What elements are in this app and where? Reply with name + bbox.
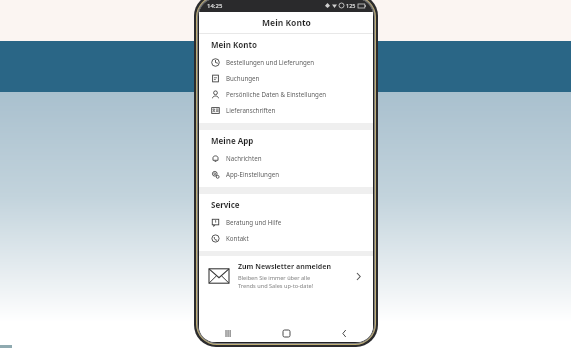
staticText: 14:25 <box>207 2 223 10</box>
button[interactable]: Bestellungen und Lieferungen <box>199 54 373 70</box>
staticText: Bestellungen und Lieferungen <box>226 58 315 66</box>
button[interactable]: Home <box>279 326 293 340</box>
staticText: App-Einstellungen <box>226 170 280 178</box>
button[interactable]: Kontakt <box>199 230 373 246</box>
staticText: Bleiben Sie immer über alle <box>238 274 311 282</box>
staticText: Persönliche Daten & Einstellungen <box>226 90 327 98</box>
button[interactable]: Back <box>337 326 351 340</box>
button[interactable]: Recent apps <box>221 326 235 340</box>
button[interactable]: Nachrichten <box>199 150 373 166</box>
staticText: Buchungen <box>226 74 260 82</box>
staticText: Mein Konto <box>211 39 257 50</box>
button[interactable]: Beratung und Hilfe <box>199 214 373 230</box>
staticText: Meine App <box>211 135 254 146</box>
button[interactable]: Zum Newsletter anmelden <box>199 256 373 296</box>
staticText: Lieferanschriften <box>226 106 276 114</box>
staticText: Nachrichten <box>226 154 262 162</box>
staticText: Service <box>211 199 240 210</box>
button[interactable]: Persönliche Daten & Einstellungen <box>199 86 373 102</box>
staticText: Kontakt <box>226 234 249 242</box>
staticText: Mein Konto <box>262 17 311 29</box>
staticText: 125 <box>346 2 356 9</box>
button[interactable]: Buchungen <box>199 70 373 86</box>
other: Öffnen <box>352 270 364 282</box>
staticText: Beratung und Hilfe <box>226 218 282 226</box>
button[interactable]: App-Einstellungen <box>199 166 373 182</box>
staticText: Zum Newsletter anmelden <box>238 262 331 272</box>
button[interactable]: Lieferanschriften <box>199 102 373 118</box>
staticText: Trends und Sales up-to-date! <box>238 282 314 290</box>
